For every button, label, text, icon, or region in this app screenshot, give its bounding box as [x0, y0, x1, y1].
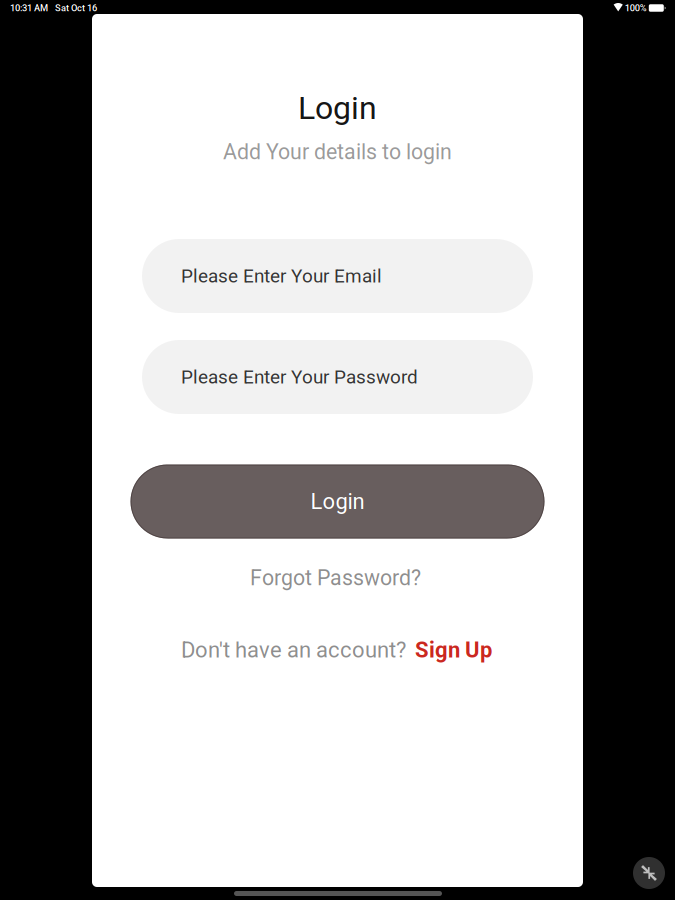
- button[interactable]: Login: [130, 464, 544, 538]
- button[interactable]: Resize window: [633, 857, 665, 889]
- staticText: Login: [298, 89, 377, 127]
- staticText: Forgot Password?: [250, 565, 421, 590]
- button[interactable]: Forgot Password?: [240, 559, 431, 596]
- staticText: Please Enter Your Password: [181, 366, 418, 388]
- button[interactable]: Please Enter Your Password: [142, 340, 533, 414]
- staticText: Sat Oct 16: [55, 2, 97, 13]
- button[interactable]: Please Enter Your Email: [142, 239, 533, 313]
- staticText: 100%: [625, 2, 647, 13]
- staticText: Please Enter Your Email: [181, 265, 382, 287]
- staticText: Login: [310, 489, 364, 514]
- staticText: 10:31 AM: [10, 2, 48, 13]
- staticText: Don't have an account?: [181, 637, 406, 663]
- staticText: Sign Up: [415, 637, 492, 663]
- button[interactable]: Sign Up: [406, 633, 494, 667]
- staticText: Add Your details to login: [223, 139, 452, 164]
